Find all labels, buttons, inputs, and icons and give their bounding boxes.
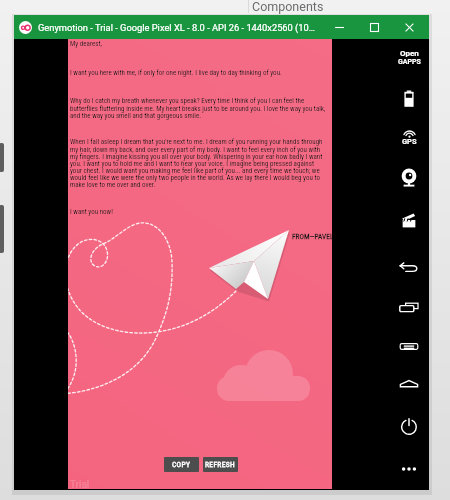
button[interactable]: Panel tab	[0, 143, 4, 172]
staticText: Trial	[70, 479, 90, 489]
staticText: When I fall asleep I dream that you're n…	[70, 138, 327, 188]
button[interactable]: Back	[389, 253, 429, 281]
button[interactable]: More	[389, 455, 429, 483]
button[interactable]: Battery	[389, 85, 429, 113]
staticText: GPS	[402, 137, 417, 146]
button[interactable]: Screen recorder	[389, 206, 429, 234]
button[interactable]: GPS	[389, 124, 429, 152]
button[interactable]: Minimise	[322, 15, 357, 39]
staticText: Genymotion - Trial - Google Pixel XL - 8…	[38, 22, 315, 33]
button[interactable]: Close	[392, 15, 427, 39]
staticText: Components	[252, 0, 324, 14]
button[interactable]: Camera	[389, 164, 429, 192]
button[interactable]: Home	[389, 370, 429, 398]
staticText: My dearest,	[70, 40, 102, 48]
button[interactable]: Recent apps	[389, 293, 429, 321]
button[interactable]: REFRESH	[203, 457, 238, 472]
staticText: COPY	[172, 460, 191, 469]
staticText: I want you here with me, if only for one…	[70, 69, 282, 77]
button[interactable]: COPY	[164, 457, 199, 472]
button[interactable]: Power	[389, 413, 429, 441]
staticText: GAPPS	[398, 58, 421, 66]
staticText: Why do I catch my breath whenever you sp…	[70, 97, 327, 119]
button[interactable]: Maximise	[357, 15, 392, 39]
staticText: I want you now!	[70, 208, 113, 216]
button[interactable]: Menu	[389, 333, 429, 361]
button[interactable]: Panel tab	[0, 205, 4, 253]
staticText: FROM—PAVEL	[292, 232, 332, 241]
staticText: REFRESH	[205, 460, 236, 469]
staticText: Open	[400, 49, 419, 58]
button[interactable]: Open GAPPS	[389, 43, 429, 71]
